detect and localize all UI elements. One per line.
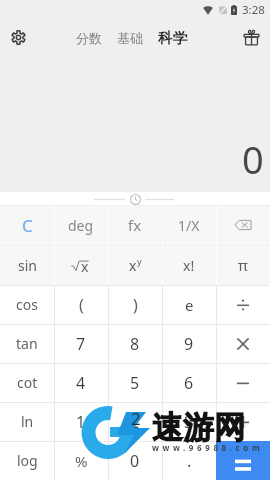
staticText: 1 — [76, 411, 86, 433]
staticText: 0 — [130, 450, 140, 472]
button[interactable]: x — [108, 245, 162, 285]
button[interactable]: History — [128, 193, 142, 206]
staticText: 8 — [130, 333, 140, 355]
button[interactable]: 9 — [162, 324, 216, 363]
staticText: 基础 — [117, 30, 143, 46]
button[interactable]: ln — [0, 402, 54, 441]
button[interactable]: Multiply — [216, 324, 270, 363]
staticText: y — [137, 255, 142, 267]
button[interactable]: deg — [54, 205, 108, 245]
staticText: 2 — [131, 407, 141, 430]
staticText: log — [17, 451, 38, 470]
staticText: www.96988.com — [152, 442, 264, 453]
staticText: 分数 — [76, 30, 102, 46]
button[interactable]: x — [54, 245, 108, 285]
button[interactable]: 8 — [108, 324, 162, 363]
button[interactable]: 4 — [54, 363, 108, 402]
staticText: 2 — [130, 411, 140, 433]
button[interactable]: Settings — [4, 23, 34, 53]
button[interactable]: . — [162, 441, 216, 480]
staticText: e — [185, 295, 194, 315]
button[interactable]: 分数 — [73, 25, 105, 51]
button[interactable]: % — [54, 441, 108, 480]
staticText: 0 — [242, 133, 264, 185]
button[interactable]: 1 — [54, 402, 108, 441]
button[interactable]: e — [162, 285, 216, 324]
button[interactable]: Equals — [216, 441, 270, 480]
staticText: 7 — [76, 333, 86, 355]
staticText: 科学 — [158, 29, 187, 47]
other: Backspace — [233, 215, 253, 235]
button[interactable]: 6 — [162, 363, 216, 402]
other: Multiply — [237, 338, 249, 350]
other: Plus — [237, 416, 249, 428]
button[interactable]: 2 — [108, 402, 162, 441]
button[interactable]: Gift — [235, 23, 265, 53]
staticText: 3 — [184, 411, 194, 433]
button[interactable]: Backspace — [216, 205, 270, 245]
button[interactable]: Divide — [216, 285, 270, 324]
button[interactable]: cos — [0, 285, 54, 324]
staticText: . — [187, 450, 192, 472]
staticText: π — [238, 255, 248, 275]
button[interactable]: 1/X — [162, 205, 216, 245]
button[interactable]: 3 — [162, 402, 216, 441]
staticText: x — [129, 256, 137, 275]
staticText: 3:28 — [242, 2, 265, 18]
other: Divide — [237, 299, 249, 311]
button[interactable]: Minus — [216, 363, 270, 402]
staticText: 4 — [76, 372, 86, 394]
staticText: fx — [128, 215, 142, 235]
staticText: 6 — [184, 372, 194, 394]
button[interactable]: x! — [162, 245, 216, 285]
button[interactable]: tan — [0, 324, 54, 363]
staticText: ln — [21, 412, 34, 431]
button[interactable]: 科学 — [155, 24, 190, 52]
staticText: 速游网 — [152, 408, 245, 447]
staticText: x! — [183, 256, 195, 275]
other: Minus — [237, 377, 249, 389]
staticText: x — [81, 257, 89, 276]
button[interactable]: C — [0, 205, 54, 245]
staticText: 9 — [184, 333, 194, 355]
staticText: cos — [16, 295, 38, 314]
other: Equals — [235, 456, 251, 474]
button[interactable]: Plus — [216, 402, 270, 441]
button[interactable]: fx — [108, 205, 162, 245]
button[interactable]: log — [0, 441, 54, 480]
button[interactable]: sin — [0, 245, 54, 285]
staticText: 5 — [130, 372, 140, 394]
button[interactable]: ) — [108, 285, 162, 324]
staticText: % — [75, 451, 88, 471]
staticText: 1/X — [178, 216, 200, 235]
button[interactable]: cot — [0, 363, 54, 402]
button[interactable]: π — [216, 245, 270, 285]
staticText: tan — [16, 334, 38, 353]
button[interactable]: ( — [54, 285, 108, 324]
staticText: ( — [79, 294, 84, 316]
button[interactable]: 0 — [108, 441, 162, 480]
button[interactable]: 5 — [108, 363, 162, 402]
staticText: cot — [17, 373, 38, 392]
staticText: ) — [133, 294, 138, 316]
staticText: C — [22, 214, 33, 237]
staticText: sin — [18, 256, 37, 275]
button[interactable]: 基础 — [114, 25, 146, 51]
button[interactable]: 7 — [54, 324, 108, 363]
staticText: deg — [68, 216, 94, 235]
